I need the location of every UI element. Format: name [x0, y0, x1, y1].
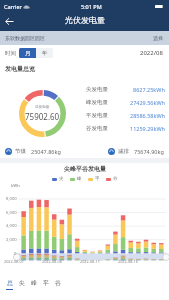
staticText: 东软数据园区园区 — [5, 35, 45, 41]
staticText: 5:01 PM — [81, 3, 102, 10]
staticText: 平 — [95, 176, 100, 182]
button[interactable]: 选择 — [153, 35, 163, 41]
staticText: 峰发电量 — [86, 99, 108, 106]
staticText: 8,000 — [6, 196, 17, 202]
staticText: 75674.90kg — [134, 148, 164, 155]
staticText: 谷 — [113, 176, 118, 182]
staticText: 节煤 — [15, 148, 26, 155]
staticText: 25047.86kg — [31, 148, 61, 155]
staticText: 峰 — [77, 176, 82, 182]
staticText: 2022-08-16 — [118, 259, 138, 264]
button[interactable]: Back — [2, 14, 17, 29]
staticText: 总发电量 — [35, 105, 50, 110]
staticText: 6,000 — [6, 210, 17, 216]
staticText: 谷发电量 — [86, 125, 108, 132]
staticText: 选择 — [153, 35, 163, 41]
staticText: 2022-08-06 — [42, 259, 62, 264]
staticText: 尖 — [19, 279, 25, 287]
staticText: kWh — [11, 183, 20, 189]
button[interactable]: 谷 — [55, 279, 61, 289]
staticText: 28586.58kWh — [130, 112, 165, 119]
staticText: 75902.60 — [25, 111, 60, 122]
staticText: 尖 — [59, 176, 64, 182]
staticText: 2022/08 — [140, 49, 163, 57]
staticText: 光伏发电量 — [65, 15, 105, 25]
button[interactable]: 尖 — [19, 279, 25, 289]
staticText: 11259.29kWh — [130, 125, 165, 132]
staticText: 尖峰平谷发电量 — [64, 165, 106, 173]
staticText: 时间 — [5, 50, 16, 57]
staticText: Carrier — [4, 3, 22, 10]
button[interactable]: 年 — [36, 48, 53, 58]
staticText: 2,000 — [6, 237, 17, 243]
staticText: 年 — [42, 50, 48, 57]
staticText: 峰 — [31, 279, 37, 287]
button[interactable]: 平 — [43, 279, 49, 289]
staticText: 尖发电量 — [86, 86, 108, 93]
staticText: 2022-08-11 — [80, 259, 100, 264]
button[interactable]: 月 — [19, 48, 36, 58]
staticText: 0 — [14, 251, 17, 257]
button[interactable]: 峰 — [31, 279, 37, 289]
staticText: 平 — [43, 279, 49, 287]
staticText: 发电量总览 — [5, 65, 35, 73]
staticText: 27429.56kWh — [130, 99, 165, 106]
staticText: 2022-08-01 — [4, 259, 24, 264]
button[interactable]: 总 — [6, 279, 13, 290]
staticText: 平发电量 — [86, 112, 108, 119]
staticText: 4,000 — [6, 223, 17, 229]
staticText: 月 — [25, 50, 31, 57]
staticText: 总 — [7, 279, 13, 287]
staticText: 8627.25kWh — [133, 86, 165, 93]
staticText: 减排 — [118, 148, 129, 155]
staticText: 谷 — [55, 279, 61, 287]
